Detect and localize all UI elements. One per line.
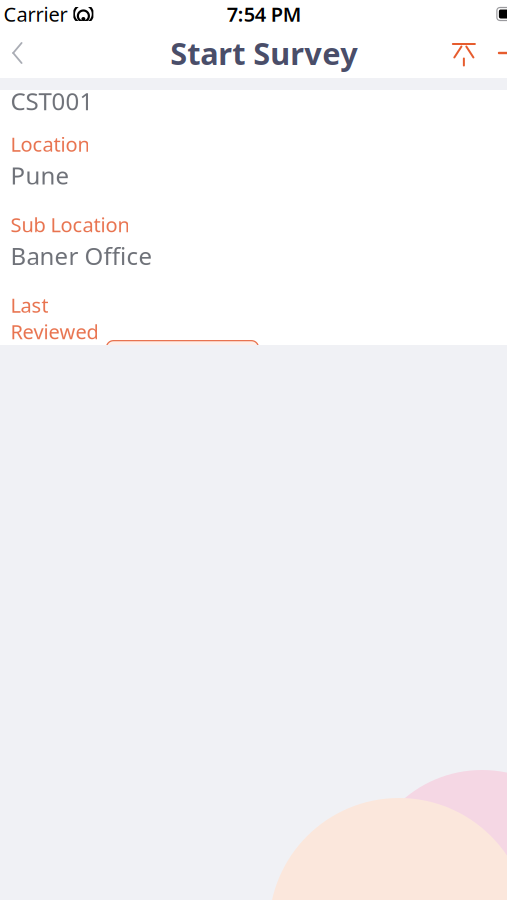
button[interactable]: Add (487, 31, 507, 75)
staticText: Last Reviewed (10, 292, 98, 345)
button[interactable]: Back (0, 30, 41, 76)
staticText: Carrier (3, 1, 67, 27)
staticText: Sub Location (10, 211, 129, 238)
button[interactable]: Scan (106, 341, 258, 379)
button[interactable]: Filter (441, 32, 487, 74)
staticText: Baner Office (10, 240, 152, 272)
staticText: Device (10, 56, 72, 83)
staticText: Location (10, 131, 89, 157)
staticText: 7:54 PM (227, 1, 302, 27)
staticText: CST001 (10, 85, 93, 117)
staticText: Start Survey (170, 33, 358, 73)
staticText: Pune (10, 159, 69, 191)
